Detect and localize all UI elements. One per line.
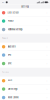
staticText: Sync: [7, 62, 11, 65]
staticText: Privacy: [7, 20, 13, 22]
button[interactable]: Lock screen: [0, 9, 50, 17]
staticText: Network: [2, 37, 8, 39]
button[interactable]: About phone: [0, 93, 50, 100]
button[interactable]: Call settings: [0, 85, 50, 93]
button[interactable]: Additional settings: [0, 25, 50, 34]
staticText: Services: [2, 71, 9, 73]
staticText: VPN: [7, 54, 11, 56]
staticText: Call settings: [7, 88, 17, 90]
button[interactable]: Sync: [0, 59, 50, 68]
button[interactable]: Wi-Fi: [0, 77, 50, 85]
staticText: Additional settings: [7, 28, 22, 31]
button[interactable]: Privacy: [0, 17, 50, 25]
staticText: Settings: [21, 5, 29, 8]
staticText: About phone: [7, 96, 18, 99]
button[interactable]: VPN: [0, 51, 50, 59]
button[interactable]: Bluetooth: [0, 43, 50, 51]
staticText: Wi-Fi: [7, 79, 11, 82]
staticText: Bluetooth: [7, 45, 15, 48]
staticText: 9:41: [2, 1, 5, 3]
staticText: Lock screen: [7, 11, 18, 14]
